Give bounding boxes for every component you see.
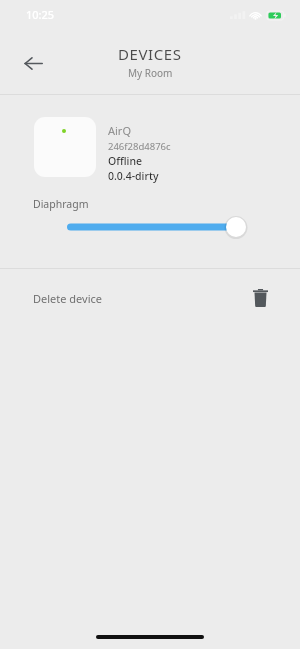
staticText: Diaphragm [33, 197, 89, 211]
button[interactable]: AirQ [0, 112, 300, 184]
staticText: 246f28d4876c [108, 140, 171, 153]
button[interactable]: Delete device [0, 269, 300, 327]
staticText: DEVICES [118, 44, 182, 64]
button[interactable]: Back [16, 46, 50, 80]
button[interactable] [0, 212, 300, 242]
staticText: AirQ [108, 123, 132, 138]
other: Delete [243, 281, 277, 315]
staticText: 0.0.4-dirty [108, 169, 159, 183]
staticText: 10:25 [26, 7, 55, 22]
staticText: Delete device [33, 291, 102, 306]
staticText: My Room [128, 66, 173, 80]
staticText: Offline [108, 154, 143, 168]
